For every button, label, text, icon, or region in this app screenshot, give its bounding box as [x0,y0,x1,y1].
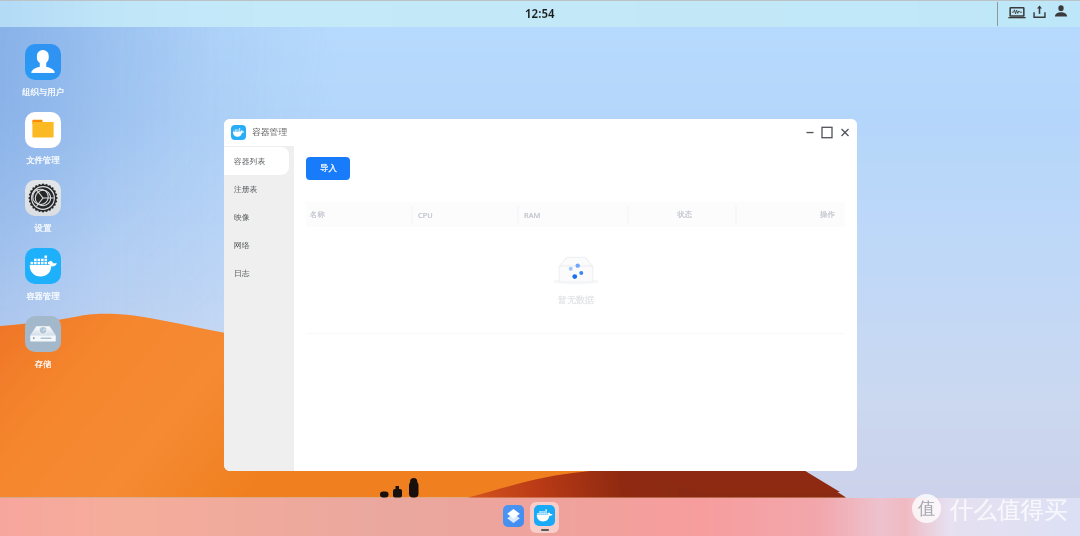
staticText: 组织与用户 [15,87,71,98]
button[interactable]: 存储 [15,316,71,370]
button[interactable]: Maximize [818,123,836,142]
button[interactable]: 日志 [224,259,294,287]
button[interactable]: 文件管理 [15,112,71,166]
staticText: CPU [418,210,433,220]
staticText: 注册表 [234,184,258,194]
button[interactable]: Minimize [802,123,820,142]
button[interactable]: 网络 [224,231,294,259]
button[interactable]: System monitor [1008,3,1026,21]
staticText: 12:54 [525,6,555,22]
button[interactable]: Account [1053,3,1069,19]
button[interactable]: 容器列表 [224,147,294,175]
button[interactable]: 注册表 [224,175,294,203]
staticText: 操作 [820,210,835,219]
button[interactable]: 组织与用户 [15,44,71,98]
staticText: 日志 [234,268,250,278]
button[interactable]: App launcher [503,505,524,527]
staticText: RAM [524,210,541,220]
button[interactable]: 导入 [306,157,350,180]
staticText: 容器列表 [234,156,266,166]
staticText: 名称 [310,210,325,219]
staticText: 文件管理 [15,155,71,166]
button[interactable]: 映像 [224,203,294,231]
staticText: 网络 [234,240,250,250]
button[interactable]: Close [836,123,854,142]
staticText: 容器管理 [15,291,71,302]
button[interactable]: 设置 [15,180,71,234]
staticText: 设置 [15,223,71,234]
staticText: 什么值得买 [950,495,1068,525]
staticText: 暂无数据 [558,294,594,305]
button[interactable]: Container manager [530,502,559,533]
staticText: 值 [918,498,935,519]
staticText: 容器管理 [252,127,288,138]
staticText: 导入 [320,163,337,174]
staticText: 映像 [234,212,250,222]
staticText: 存储 [15,359,71,370]
button[interactable]: Upload [1031,3,1048,20]
button[interactable]: 容器管理 [15,248,71,302]
staticText: 状态 [677,210,692,219]
